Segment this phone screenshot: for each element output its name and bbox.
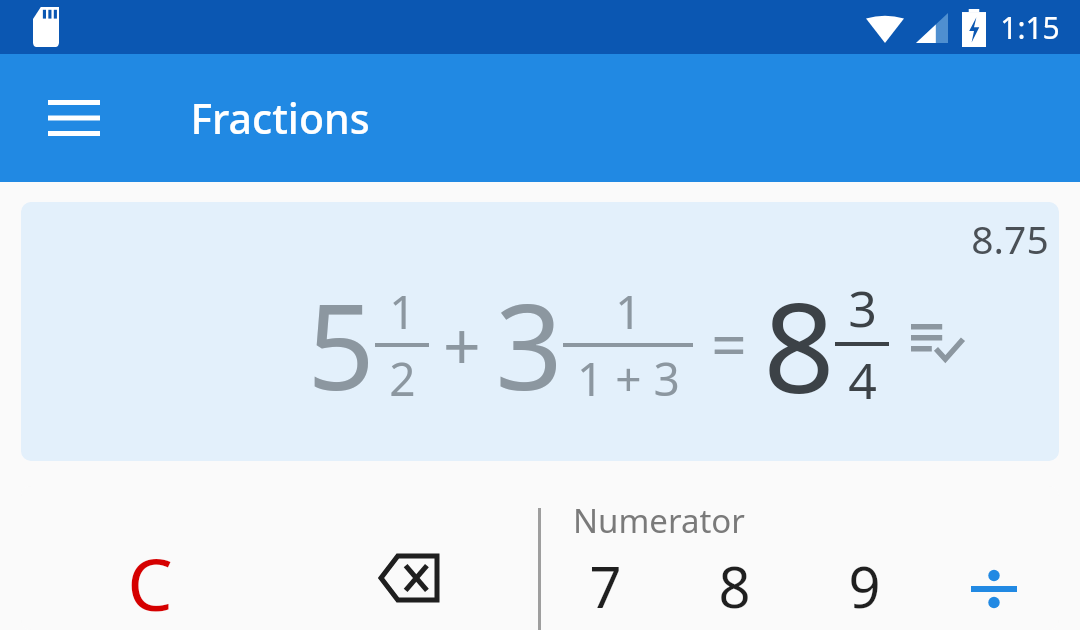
button[interactable]: 8.75	[21, 202, 1059, 461]
staticText: 8.75	[971, 212, 1049, 265]
staticText: 8	[718, 548, 751, 624]
button[interactable]: Backspace	[279, 486, 538, 630]
button[interactable]: Open navigation menu	[28, 72, 120, 164]
staticText: 1	[389, 280, 416, 343]
staticText: 1:15	[1000, 7, 1060, 48]
staticText: =	[711, 302, 747, 386]
button[interactable]: 9	[799, 548, 929, 630]
button[interactable]: 7	[541, 548, 670, 630]
staticText: Fractions	[190, 90, 370, 146]
staticText: Numerator	[573, 498, 745, 543]
staticText: 3	[495, 264, 563, 425]
button[interactable]: Show steps	[907, 314, 967, 374]
staticText: 1 + 3	[577, 347, 680, 410]
staticText: +	[443, 299, 481, 389]
staticText: 9	[848, 548, 881, 624]
staticText: 5	[307, 264, 375, 425]
staticText: 2	[389, 347, 416, 410]
staticText: 7	[589, 548, 622, 624]
staticText: 3	[848, 274, 877, 342]
button[interactable]: 8	[670, 548, 799, 630]
button[interactable]: C	[21, 486, 279, 630]
staticText: C	[127, 534, 173, 630]
staticText: 4	[848, 346, 877, 414]
button[interactable]: Divide	[929, 548, 1059, 630]
staticText: 1	[615, 280, 642, 343]
staticText: 8	[763, 259, 835, 429]
